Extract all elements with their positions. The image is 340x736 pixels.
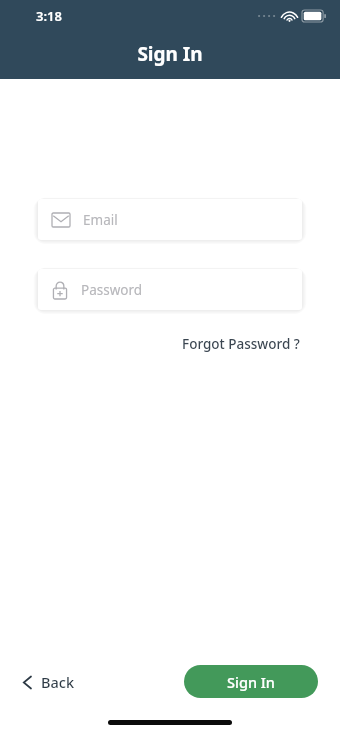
button[interactable]: Email — [38, 199, 302, 240]
staticText: 3:18 — [36, 7, 62, 25]
staticText: Sign In — [227, 672, 275, 692]
staticText: Email — [83, 211, 118, 229]
staticText: Forgot Password ? — [182, 335, 300, 353]
staticText: Password — [81, 281, 143, 299]
staticText: Sign In — [137, 41, 203, 67]
button[interactable]: Sign In — [184, 665, 318, 698]
button[interactable]: Back — [18, 666, 79, 698]
button[interactable]: Forgot Password ? — [180, 331, 302, 357]
staticText: Back — [41, 672, 75, 692]
button[interactable]: Password — [38, 269, 302, 310]
